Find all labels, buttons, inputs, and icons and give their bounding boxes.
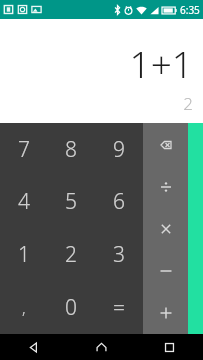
button[interactable]: 5 [47,175,95,228]
button[interactable]: = [95,281,143,334]
staticText: , [22,297,26,319]
staticText: 6:35 [180,3,200,17]
button[interactable]: Divide [143,166,188,208]
button[interactable]: Recent apps [135,334,203,360]
button[interactable]: 7 [0,123,47,175]
button[interactable]: Multiply [143,208,188,250]
button[interactable]: 4 [0,175,47,228]
staticText: 9 [113,135,125,164]
staticText: 1+1 [129,38,193,88]
button[interactable]: 2 [47,228,95,281]
staticText: 7 [18,135,30,164]
button[interactable]: Plus [143,292,188,334]
button[interactable]: Minus [143,250,188,292]
staticText: 1 [18,240,30,269]
staticText: 5 [65,187,77,216]
button[interactable]: 6 [95,175,143,228]
button[interactable]: Home [67,334,135,360]
staticText: 8 [65,135,77,164]
staticText: = [113,293,125,322]
button[interactable]: 3 [95,228,143,281]
button[interactable]: Back [0,334,67,360]
button[interactable]: 8 [47,123,95,175]
button[interactable]: 0 [47,281,95,334]
staticText: 2 [65,240,77,269]
staticText: 4 [18,187,30,216]
button[interactable]: 1 [0,228,47,281]
staticText: 0 [65,293,77,322]
button[interactable]: Backspace [143,123,188,166]
staticText: 6 [113,187,125,216]
button[interactable]: , [0,281,47,334]
staticText: 3 [113,240,125,269]
staticText: 2 [183,92,193,115]
button[interactable]: 9 [95,123,143,175]
